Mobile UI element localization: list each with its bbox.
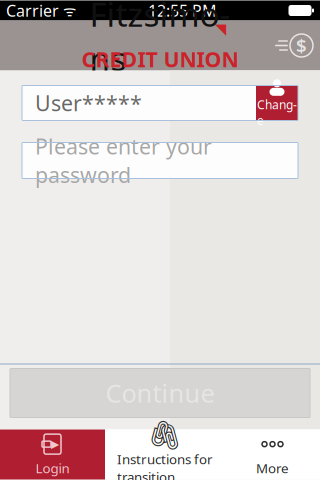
staticText: ◥ — [215, 21, 226, 37]
button[interactable]: Continue — [10, 368, 310, 417]
button[interactable]: More — [225, 429, 320, 479]
staticText: CREDIT UNION — [81, 45, 238, 73]
staticText: Instructions for transition — [117, 450, 213, 480]
button[interactable]: Rates — [268, 20, 320, 70]
staticText: 12:55 PM — [148, 0, 217, 21]
staticText: Carrier — [6, 0, 59, 21]
staticText: Fitzsimons — [89, 0, 230, 80]
staticText: Login — [35, 459, 69, 477]
staticText: ᯤ — [59, 1, 76, 20]
button[interactable]: 🖇 — [105, 429, 225, 479]
staticText: ▶ — [51, 438, 59, 450]
staticText: User***** — [35, 89, 142, 117]
staticText: Please enter your password — [35, 132, 212, 189]
button[interactable]: ▶ — [0, 429, 105, 479]
staticText: Continue — [105, 376, 214, 410]
staticText: Change — [257, 97, 297, 128]
button[interactable]: Change — [256, 85, 298, 120]
staticText: 🖇 — [147, 419, 183, 451]
staticText: $ — [296, 33, 307, 58]
staticText: More — [256, 459, 289, 477]
